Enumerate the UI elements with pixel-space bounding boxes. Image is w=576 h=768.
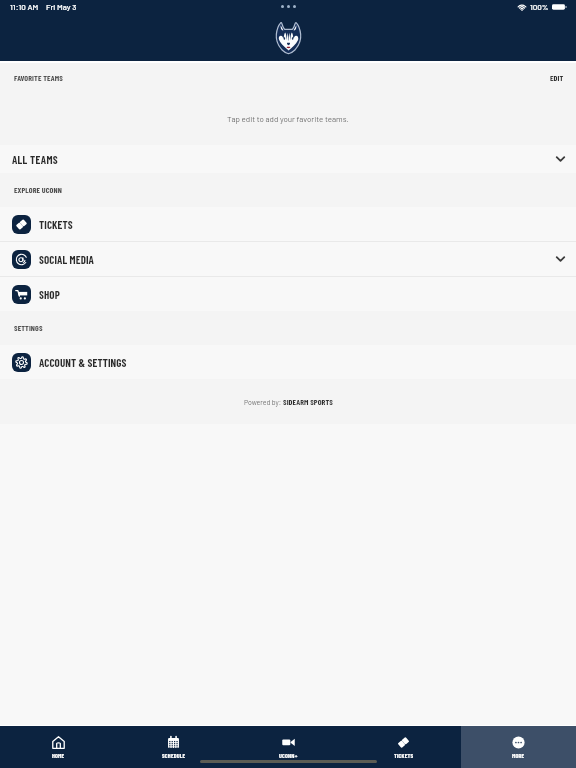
staticText: EDIT xyxy=(550,73,564,83)
staticText: Powered by: xyxy=(244,398,283,406)
button[interactable]: SCHEDULE xyxy=(116,726,231,768)
staticText: TICKETS xyxy=(39,218,73,231)
staticText: SHOP xyxy=(39,288,60,301)
staticText: ACCOUNT & SETTINGS xyxy=(39,356,127,369)
button[interactable]: TICKETS xyxy=(346,726,461,768)
staticText: MORE xyxy=(512,752,525,759)
staticText: TICKETS xyxy=(394,752,414,759)
staticText: Tap edit to add your favorite teams. xyxy=(227,114,349,124)
staticText: FAVORITE TEAMS xyxy=(14,73,63,83)
button[interactable]: ACCOUNT & SETTINGS xyxy=(0,345,576,379)
button[interactable]: ALL TEAMS xyxy=(0,145,576,173)
staticText: UCONN+ xyxy=(279,752,298,759)
staticText: ALL TEAMS xyxy=(12,153,58,166)
button[interactable]: SHOP xyxy=(0,277,576,311)
staticText: 11:10 AM xyxy=(10,2,39,12)
button[interactable]: UCONN+ xyxy=(231,726,346,768)
staticText: HOME xyxy=(52,752,65,759)
staticText: SCHEDULE xyxy=(162,752,186,759)
staticText: EXPLORE UCONN xyxy=(14,185,62,195)
staticText: 100% xyxy=(530,2,549,12)
other: UConn Huskies xyxy=(274,23,303,53)
staticText: SOCIAL MEDIA xyxy=(39,253,95,266)
button[interactable]: HOME xyxy=(0,726,116,768)
staticText: Fri May 3 xyxy=(46,2,77,12)
button[interactable]: TICKETS xyxy=(0,207,576,241)
staticText: SIDEARM SPORTS xyxy=(283,397,333,407)
staticText: SETTINGS xyxy=(14,323,43,333)
button[interactable]: MORE xyxy=(461,726,576,768)
button[interactable]: SOCIAL MEDIA xyxy=(0,242,576,276)
button[interactable]: EDIT xyxy=(538,65,576,91)
